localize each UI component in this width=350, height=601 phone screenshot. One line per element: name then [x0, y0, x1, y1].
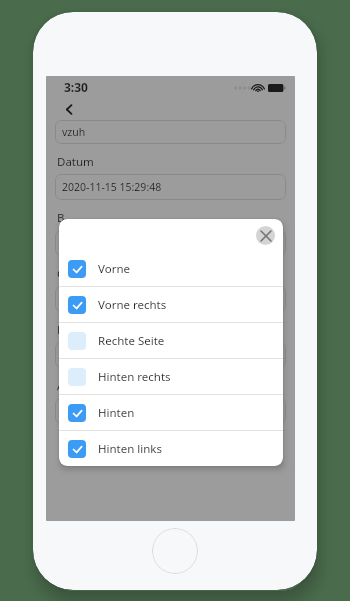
staticText: B [57, 210, 65, 226]
staticText: Hinten [98, 405, 135, 421]
button[interactable] [55, 342, 286, 368]
staticText: Rechte Seite [98, 333, 165, 349]
button[interactable]: 2020-11-15 15:29:48 [55, 174, 286, 200]
button[interactable]: Vorne [59, 251, 283, 286]
button[interactable]: vzuh [55, 120, 286, 144]
staticText: Airbags ausgelöst? [57, 378, 159, 394]
button[interactable]: Close [256, 226, 275, 245]
staticText: G [57, 266, 66, 282]
staticText: Hinten rechts [98, 369, 171, 385]
button[interactable]: Hinten [59, 395, 283, 430]
staticText: Hinten links [98, 441, 163, 457]
staticText: 3:30 [64, 79, 88, 95]
button[interactable]: Home [152, 528, 198, 574]
button[interactable]: Hinten links [59, 431, 283, 466]
button[interactable]: Rechte Seite [59, 323, 283, 358]
button[interactable] [55, 286, 286, 312]
staticText: vzuh [62, 125, 86, 139]
button[interactable]: Vorne rechts [59, 287, 283, 322]
staticText: Vorne rechts [98, 297, 167, 313]
button[interactable] [55, 230, 286, 256]
staticText: 2020-11-15 15:29:48 [62, 180, 162, 194]
staticText: Datum [57, 154, 94, 170]
staticText: Vorne [98, 261, 130, 277]
button[interactable]: Hinten rechts [59, 359, 283, 394]
button[interactable]: Back [58, 98, 80, 120]
staticText: E [57, 322, 64, 338]
button[interactable] [55, 398, 286, 424]
